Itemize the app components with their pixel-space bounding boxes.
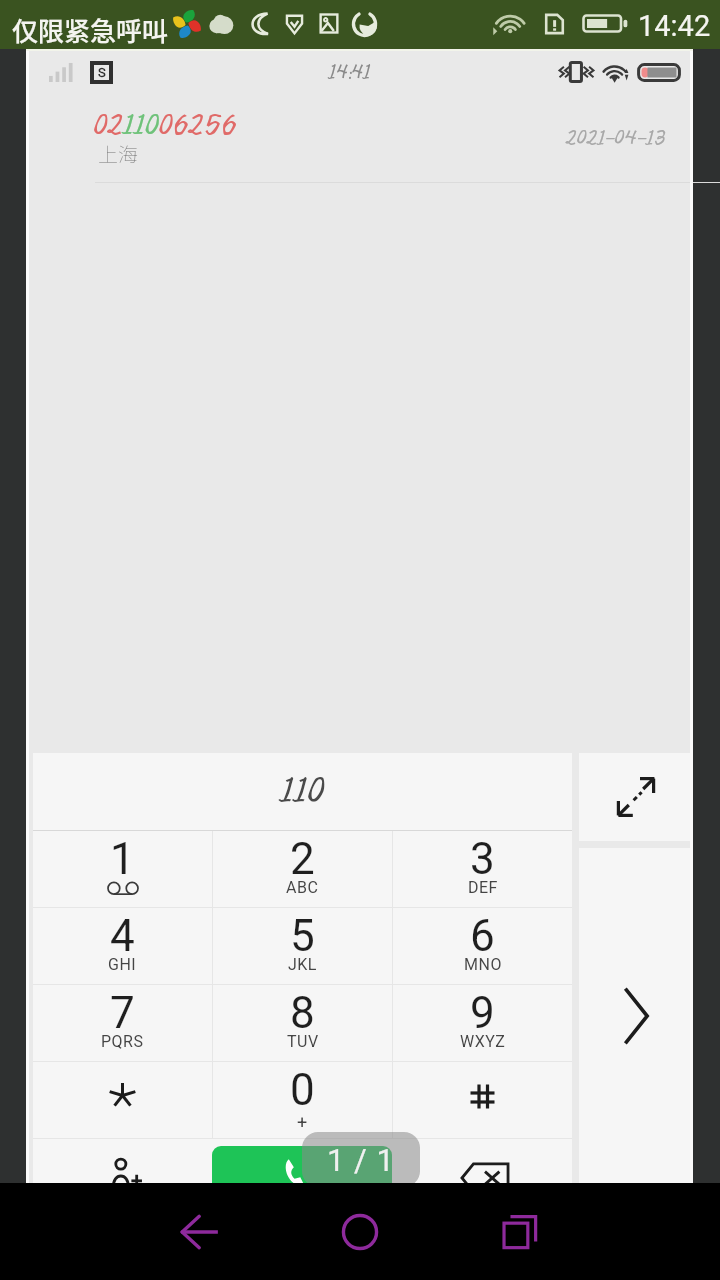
button[interactable]: 2 (213, 831, 392, 907)
staticText: 6 (470, 910, 495, 962)
staticText: 7 (110, 987, 135, 1039)
staticText: + (297, 1112, 308, 1133)
staticText: 0 (290, 1064, 315, 1116)
button[interactable]: 9 (393, 985, 572, 1061)
staticText: TUV (287, 1032, 319, 1051)
button[interactable]: Next page (579, 848, 693, 1183)
button[interactable] (393, 1062, 572, 1138)
button[interactable]: Expand keypad (579, 753, 693, 841)
staticText: DEF (468, 878, 498, 897)
button[interactable]: 110 (33, 753, 572, 830)
staticText: 0211006256 (94, 107, 237, 146)
staticText: WXYZ (460, 1032, 506, 1051)
button[interactable]: Add contact (33, 1139, 212, 1183)
staticText: 110 (281, 768, 325, 816)
staticText: MNO (464, 955, 502, 974)
button[interactable]: Recents (460, 1183, 580, 1280)
button[interactable]: Back (140, 1183, 260, 1280)
staticText: ABC (286, 878, 319, 897)
staticText: 5 (290, 910, 315, 962)
staticText: PQRS (101, 1032, 144, 1051)
staticText: JKL (288, 955, 317, 974)
staticText: S (98, 65, 106, 80)
staticText: 上海 (98, 139, 138, 168)
staticText: 2 (290, 833, 315, 885)
button[interactable]: 5 (213, 908, 392, 984)
button[interactable]: Home (300, 1183, 420, 1280)
button[interactable]: 0 (213, 1062, 392, 1138)
button[interactable]: Delete (392, 1139, 572, 1183)
staticText: 1 / 1 (327, 1142, 396, 1178)
button[interactable]: Call (212, 1146, 392, 1183)
button[interactable]: 4 (33, 908, 212, 984)
staticText: 8 (290, 987, 315, 1039)
staticText: 14:42 (638, 9, 711, 43)
staticText: 9 (470, 987, 495, 1039)
staticText: GHI (108, 955, 137, 974)
button[interactable]: 0211006256 (26, 94, 693, 183)
staticText: 2021-04-13 (566, 125, 667, 153)
staticText: 仅限紧急呼叫 (12, 11, 169, 49)
staticText: 14:41 (329, 60, 371, 86)
staticText: 4 (110, 910, 135, 962)
button[interactable]: 7 (33, 985, 212, 1061)
staticText: 1 (110, 833, 135, 885)
button[interactable]: 3 (393, 831, 572, 907)
button[interactable]: 1 (33, 831, 212, 907)
button[interactable]: 6 (393, 908, 572, 984)
button[interactable]: 8 (213, 985, 392, 1061)
staticText: 3 (470, 833, 495, 885)
button[interactable] (33, 1062, 212, 1138)
